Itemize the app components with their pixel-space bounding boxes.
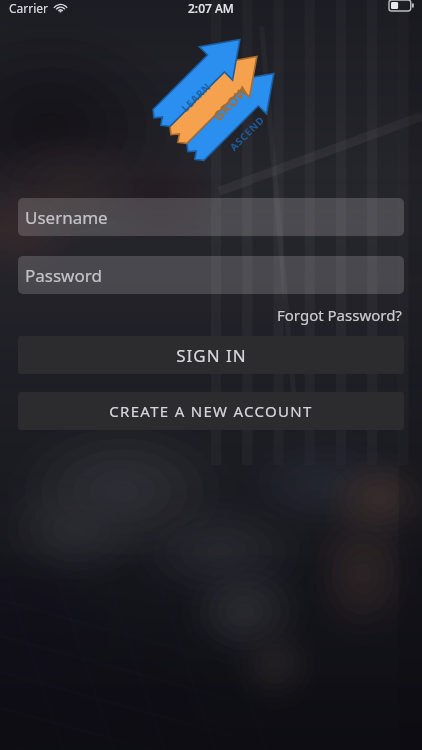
button[interactable]: Password [18,256,404,294]
staticText: 2:07 AM [188,0,234,16]
staticText: LEARN [178,79,214,115]
staticText: SIGN IN [176,344,247,367]
button[interactable]: SIGN IN [18,336,404,374]
button[interactable]: CREATE A NEW ACCOUNT [18,392,404,430]
button[interactable]: Forgot Password? [275,300,404,330]
staticText: Username [25,206,108,229]
staticText: Forgot Password? [277,305,402,325]
staticText: ASCEND [226,112,267,153]
button[interactable]: Username [18,198,404,236]
staticText: Password [25,264,102,287]
staticText: CREATE A NEW ACCOUNT [109,401,313,421]
staticText: Carrier [9,0,49,16]
staticText: GROW [209,81,253,125]
